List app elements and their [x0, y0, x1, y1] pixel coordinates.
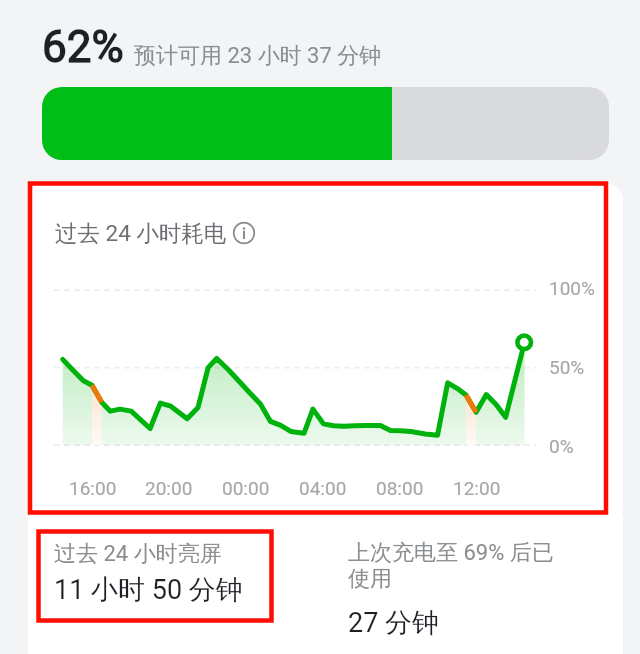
button[interactable]: 过去 24 小时亮屏 [54, 540, 243, 607]
staticText: 预计可用 23 小时 37 分钟 [134, 42, 382, 70]
staticText: 16:00 [69, 477, 117, 499]
other: Info [233, 222, 255, 244]
staticText: 62% [42, 21, 124, 73]
staticText: 11 小时 50 分钟 [54, 573, 243, 607]
staticText: 00:00 [222, 477, 270, 499]
button[interactable] [42, 87, 609, 160]
button[interactable]: 上次充电至 69% 后已使用 [348, 539, 560, 640]
button[interactable]: 过去 24 小时耗电 [55, 219, 255, 247]
staticText: 12:00 [453, 477, 501, 499]
staticText: 04:00 [299, 477, 347, 499]
staticText: 50% [549, 356, 585, 378]
staticText: 过去 24 小时亮屏 [54, 540, 222, 568]
staticText: 100% [549, 277, 595, 299]
staticText: 27 分钟 [348, 606, 440, 640]
staticText: 上次充电至 69% 后已使用 [348, 539, 560, 593]
staticText: 20:00 [145, 477, 193, 499]
staticText: 0% [549, 435, 574, 457]
staticText: 过去 24 小时耗电 [55, 219, 227, 247]
staticText: 08:00 [376, 477, 424, 499]
